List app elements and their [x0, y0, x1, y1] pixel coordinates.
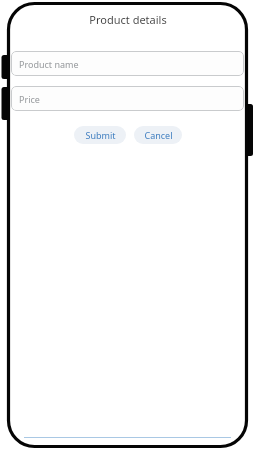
button[interactable]: Product name	[11, 51, 244, 76]
staticText: Price	[19, 93, 40, 105]
staticText: Submit	[85, 129, 116, 141]
staticText: Product details	[89, 12, 167, 27]
button[interactable]: Price	[11, 86, 244, 111]
staticText: Product name	[19, 58, 79, 70]
button[interactable]: Cancel	[134, 126, 182, 144]
staticText: Cancel	[144, 129, 173, 141]
button[interactable]: Submit	[74, 126, 126, 144]
